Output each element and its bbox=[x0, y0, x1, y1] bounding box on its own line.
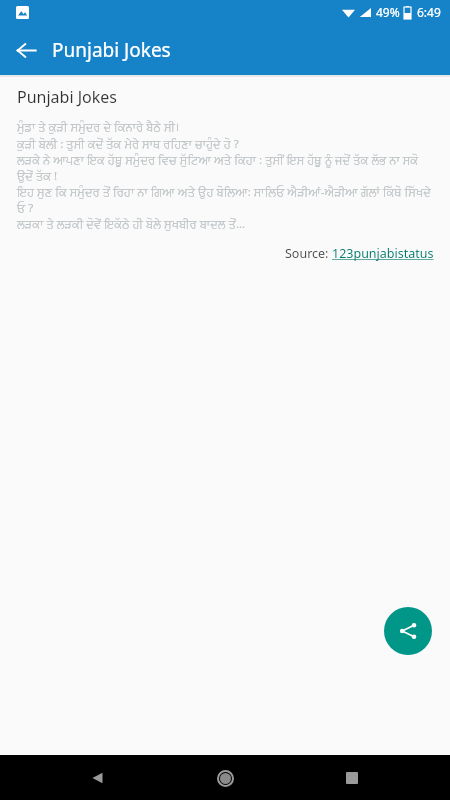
staticText: 6:49 bbox=[417, 4, 441, 20]
button[interactable]: Back bbox=[6, 30, 46, 70]
button[interactable]: Recent apps bbox=[332, 758, 372, 798]
button[interactable]: Back bbox=[78, 758, 118, 798]
button[interactable]: Share bbox=[384, 607, 432, 655]
button[interactable]: Home bbox=[204, 757, 246, 799]
staticText: 49% bbox=[376, 4, 400, 20]
staticText: 123punjabistatus bbox=[332, 245, 434, 262]
staticText: Punjabi Jokes bbox=[17, 86, 117, 108]
staticText: Punjabi Jokes bbox=[52, 37, 171, 63]
staticText: Source: bbox=[285, 245, 332, 262]
staticText: ਮੁੰਡਾ ਤੇ ਕੁੜੀ ਸਮੁੰਦਰ ਦੇ ਕਿਨਾਰੇ ਬੈਠੇ ਸੀ। … bbox=[17, 119, 434, 231]
button[interactable]: 123punjabistatus bbox=[332, 245, 434, 262]
